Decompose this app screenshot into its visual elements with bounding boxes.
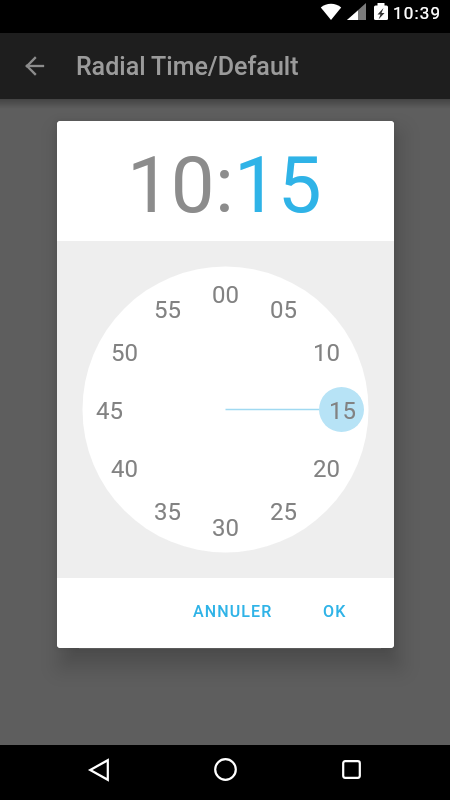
button[interactable] — [162, 745, 288, 800]
staticText: 50 — [111, 339, 138, 367]
button[interactable] — [12, 33, 57, 99]
staticText: 15 — [234, 140, 322, 231]
staticText: 40 — [111, 455, 138, 483]
staticText: : — [215, 140, 234, 231]
staticText: 45 — [96, 397, 123, 425]
staticText: 00 — [212, 281, 239, 309]
staticText: 10 — [313, 339, 340, 367]
staticText: Radial Time/Default — [76, 52, 299, 81]
staticText: 30 — [212, 514, 239, 542]
staticText: OK — [323, 602, 347, 621]
staticText: 55 — [154, 296, 181, 324]
button[interactable]: OK — [307, 586, 363, 637]
button[interactable] — [36, 745, 162, 800]
staticText: 25 — [270, 498, 297, 526]
staticText: ANNULER — [193, 602, 273, 621]
staticText: 15 — [329, 397, 356, 425]
staticText: 05 — [270, 296, 297, 324]
staticText: 20 — [313, 455, 340, 483]
staticText: 35 — [154, 498, 181, 526]
button[interactable]: ANNULER — [177, 586, 289, 637]
staticText: 10:39 — [393, 3, 442, 20]
button[interactable] — [288, 745, 414, 800]
staticText: 10 — [127, 140, 215, 231]
